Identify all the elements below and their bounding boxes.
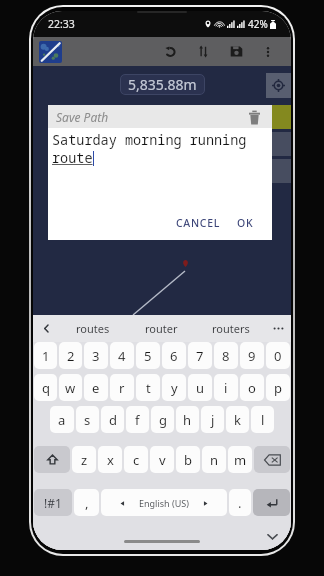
button[interactable]: Delete	[246, 109, 262, 125]
button[interactable]: u	[188, 374, 212, 401]
button[interactable]: Layers	[266, 132, 291, 156]
staticText: 1	[42, 347, 50, 365]
button[interactable]: n	[202, 446, 226, 473]
button[interactable]: x	[98, 446, 122, 473]
button[interactable]: 3	[84, 342, 108, 369]
staticText: !#1	[44, 495, 62, 511]
staticText: 4	[118, 347, 126, 365]
button[interactable]: b	[176, 446, 200, 473]
button[interactable]: g	[151, 406, 174, 433]
button[interactable]: App icon	[39, 41, 62, 63]
staticText: 6	[170, 347, 178, 365]
staticText: router	[145, 321, 178, 336]
button[interactable]: routers	[196, 315, 265, 342]
staticText: k	[234, 411, 241, 429]
staticText: p	[274, 379, 282, 397]
staticText: m	[234, 451, 247, 469]
staticText: routers	[212, 321, 250, 336]
staticText: 5	[144, 347, 152, 365]
button[interactable]: Hide keyboard	[264, 528, 280, 544]
button[interactable]: Record track	[266, 105, 291, 129]
button[interactable]: s	[76, 406, 99, 433]
staticText: b	[184, 451, 192, 469]
button[interactable]: t	[136, 374, 160, 401]
staticText: j	[211, 411, 215, 429]
button[interactable]: !#1	[34, 489, 72, 516]
button[interactable]: router	[127, 315, 196, 342]
button[interactable]: j	[201, 406, 224, 433]
staticText: CANCEL	[176, 216, 221, 230]
button[interactable]: 6	[162, 342, 186, 369]
staticText: z	[81, 451, 88, 469]
button[interactable]: f	[126, 406, 149, 433]
button[interactable]: Space	[101, 489, 227, 516]
button[interactable]: Settings	[266, 159, 291, 183]
staticText: g	[159, 411, 167, 429]
staticText: d	[109, 411, 117, 429]
button[interactable]: 7	[188, 342, 212, 369]
staticText: 7	[196, 347, 204, 365]
staticText: 9	[248, 347, 256, 365]
staticText: y	[171, 379, 178, 397]
button[interactable]: 9	[240, 342, 264, 369]
button[interactable]: z	[72, 446, 96, 473]
button[interactable]: h	[176, 406, 199, 433]
button[interactable]: routes	[59, 315, 127, 342]
button[interactable]: d	[101, 406, 124, 433]
button[interactable]: o	[240, 374, 264, 401]
button[interactable]: Undo	[154, 37, 187, 66]
staticText: q	[42, 379, 50, 397]
staticText: i	[224, 379, 228, 397]
staticText: l	[261, 411, 265, 429]
button[interactable]: More suggestions	[265, 315, 291, 342]
staticText: s	[84, 411, 91, 429]
staticText: v	[159, 451, 166, 469]
button[interactable]: Shift	[34, 446, 70, 473]
button[interactable]: k	[226, 406, 249, 433]
button[interactable]: Save	[220, 37, 253, 66]
staticText: 42%	[248, 17, 268, 31]
staticText: u	[196, 379, 205, 397]
button[interactable]: .	[229, 489, 251, 516]
button[interactable]: i	[214, 374, 238, 401]
button[interactable]: e	[84, 374, 108, 401]
button[interactable]: r	[110, 374, 134, 401]
staticText: ,	[85, 494, 89, 512]
staticText: routes	[76, 321, 110, 336]
button[interactable]: q	[34, 374, 57, 401]
button[interactable]: m	[228, 446, 252, 473]
button[interactable]: Backspace	[254, 446, 290, 473]
button[interactable]: ,	[74, 489, 99, 516]
button[interactable]: OK	[232, 212, 259, 234]
button[interactable]: 4	[110, 342, 134, 369]
staticText: c	[133, 451, 140, 469]
staticText: f	[135, 411, 140, 429]
staticText: route	[52, 149, 93, 167]
button[interactable]: Swap direction	[187, 37, 220, 66]
staticText: h	[183, 411, 192, 429]
button[interactable]: 5	[136, 342, 160, 369]
button[interactable]: w	[59, 374, 82, 401]
button[interactable]: Enter	[253, 489, 290, 516]
button[interactable]: 1	[34, 342, 57, 369]
button[interactable]: y	[162, 374, 186, 401]
button[interactable]: My location	[266, 73, 291, 98]
button[interactable]: p	[266, 374, 290, 401]
staticText: o	[248, 379, 256, 397]
staticText: 2	[67, 347, 75, 365]
button[interactable]: 8	[214, 342, 238, 369]
staticText: x	[107, 451, 114, 469]
button[interactable]: 0	[266, 342, 290, 369]
button[interactable]: v	[150, 446, 174, 473]
button[interactable]: l	[251, 406, 274, 433]
button[interactable]: More options	[253, 37, 283, 66]
button[interactable]: 2	[59, 342, 82, 369]
staticText: t	[146, 379, 151, 397]
staticText: e	[92, 379, 100, 397]
button[interactable]: CANCEL	[171, 212, 226, 234]
button[interactable]: Previous suggestions	[33, 315, 59, 342]
staticText: r	[119, 379, 125, 397]
button[interactable]: a	[50, 406, 74, 433]
staticText: Saturday morning running	[52, 131, 247, 149]
button[interactable]: c	[124, 446, 148, 473]
